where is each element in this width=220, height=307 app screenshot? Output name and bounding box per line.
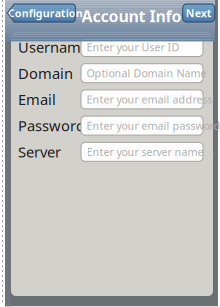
staticText: Configuration — [8, 6, 83, 20]
staticText: Email — [18, 90, 56, 109]
staticText: Account Info — [81, 5, 181, 27]
staticText: Domain — [18, 63, 73, 83]
button[interactable]: Next — [183, 4, 215, 22]
staticText: Username — [18, 37, 89, 57]
staticText: Enter your email password — [86, 118, 220, 133]
staticText: Enter your User ID — [86, 40, 179, 54]
button[interactable]: Configuration — [7, 4, 75, 22]
staticText: Next — [186, 6, 212, 20]
staticText: Enter your server name — [86, 145, 203, 159]
staticText: Server — [18, 142, 61, 162]
staticText: Optional Domain Name — [86, 66, 206, 80]
staticText: Enter your email address — [86, 92, 212, 106]
staticText: Password — [18, 116, 85, 135]
